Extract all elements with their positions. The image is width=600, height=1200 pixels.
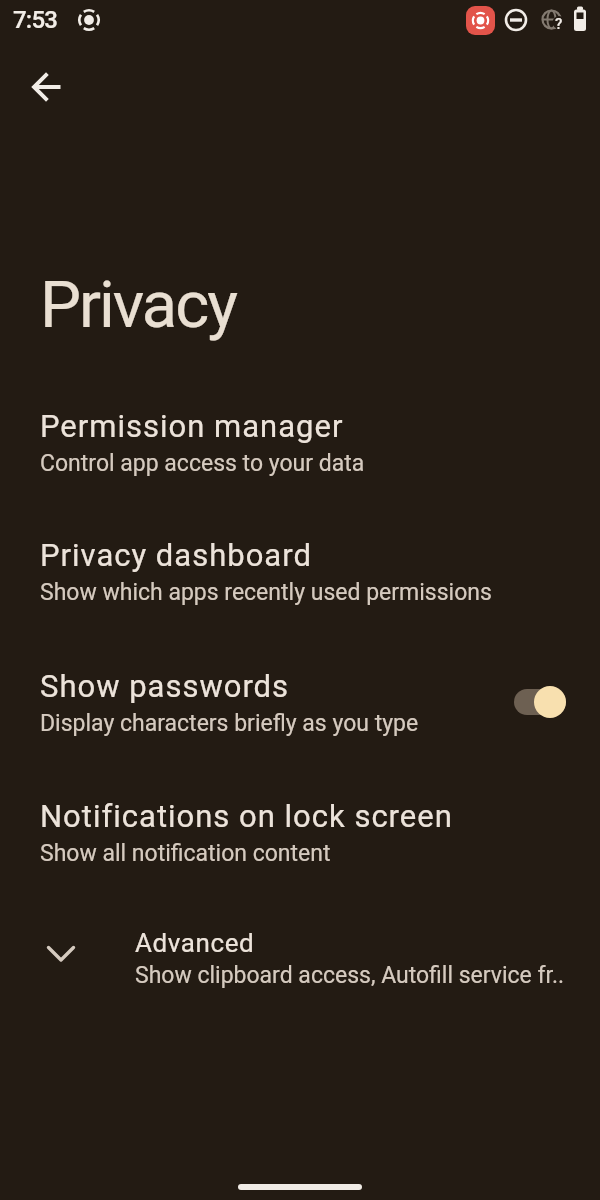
staticText: Show all notification content: [40, 840, 331, 867]
button[interactable]: Show passwords: [0, 637, 600, 767]
button[interactable]: Notifications on lock screen: [0, 767, 600, 897]
staticText: Advanced: [135, 928, 255, 958]
staticText: Show which apps recently used permission…: [40, 579, 492, 606]
staticText: Display characters briefly as you type: [40, 710, 419, 737]
staticText: 7:53: [13, 6, 58, 34]
staticText: Permission manager: [40, 408, 344, 444]
button[interactable]: Advanced: [0, 900, 600, 1017]
staticText: Show passwords: [40, 668, 290, 704]
staticText: ?: [555, 15, 563, 33]
button[interactable]: [24, 63, 70, 110]
staticText: Privacy dashboard: [40, 537, 312, 573]
staticText: Privacy: [40, 267, 236, 343]
button[interactable]: Permission manager: [0, 377, 600, 507]
staticText: Show clipboard access, Autofill service …: [135, 962, 565, 989]
button[interactable]: Privacy dashboard: [0, 506, 600, 636]
staticText: Notifications on lock screen: [40, 798, 453, 834]
staticText: Control app access to your data: [40, 450, 365, 477]
